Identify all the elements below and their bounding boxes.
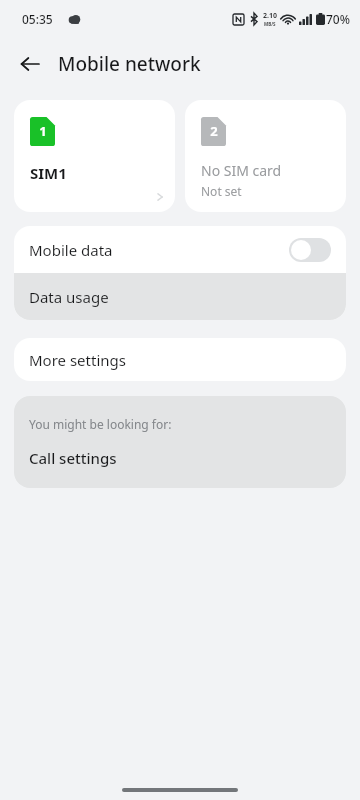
staticText: Mobile data — [29, 240, 113, 260]
staticText: Not set — [201, 183, 242, 199]
staticText: MB/S — [264, 21, 276, 27]
button[interactable]: Data usage — [14, 273, 346, 320]
button[interactable]: Call settings — [14, 448, 346, 488]
button[interactable]: 1 — [14, 100, 175, 212]
staticText: You might be looking for: — [29, 416, 172, 432]
staticText: 2.10 — [263, 11, 277, 21]
button[interactable]: 2 — [185, 100, 346, 212]
button[interactable]: Back — [8, 42, 52, 86]
button[interactable]: Mobile data — [14, 226, 346, 273]
staticText: Mobile network — [58, 51, 201, 77]
button[interactable]: Mobile data toggle — [289, 238, 331, 262]
staticText: 1 — [39, 122, 47, 140]
staticText: No SIM card — [201, 161, 282, 180]
button[interactable]: More settings — [14, 338, 346, 381]
staticText: More settings — [29, 350, 126, 370]
staticText: 70% — [326, 11, 350, 27]
staticText: 05:35 — [22, 11, 53, 27]
staticText: Data usage — [29, 287, 109, 307]
staticText: SIM1 — [30, 163, 67, 183]
staticText: Call settings — [29, 448, 117, 468]
staticText: 2 — [210, 122, 218, 140]
